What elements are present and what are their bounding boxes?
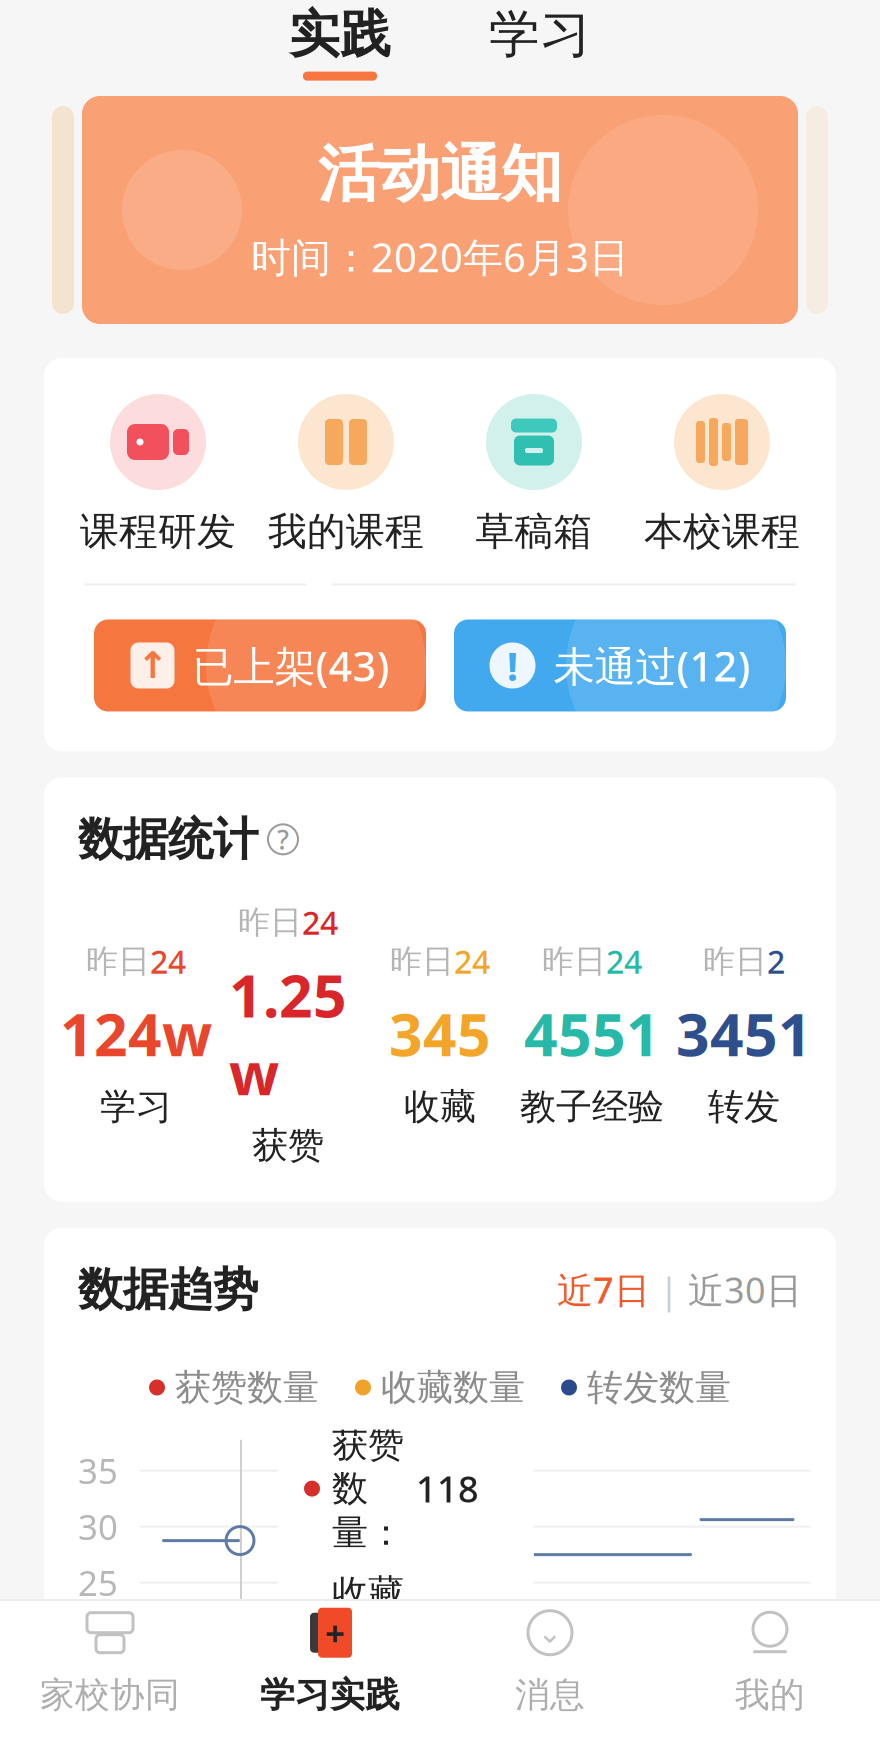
staticText: 345 (389, 995, 491, 1072)
staticText: 昨日 (542, 942, 606, 981)
staticText: 数据趋势 (78, 1262, 258, 1317)
button[interactable]: 近7日 (557, 1266, 650, 1313)
button[interactable]: 实践 (283, 3, 397, 81)
staticText: 20 (78, 1616, 118, 1662)
staticText: 124w (60, 995, 212, 1072)
staticText: ! (507, 639, 518, 692)
staticText: | (650, 1266, 688, 1313)
button[interactable]: ↑ (94, 619, 426, 711)
staticText: 1.25w (229, 956, 347, 1111)
staticText: 活动通知 (318, 137, 562, 212)
staticText: 收藏数量： (332, 1571, 404, 1704)
button[interactable]: 昨日 (516, 940, 668, 1129)
button[interactable]: 学习 (483, 3, 597, 81)
staticText: 我的课程 (268, 508, 424, 555)
staticText: 未通过(12) (553, 638, 750, 693)
staticText: 数据统计 (78, 811, 258, 867)
staticText: 家校协同 (40, 1674, 180, 1716)
button[interactable]: 昨日 (668, 940, 820, 1129)
button[interactable]: ⌄ (440, 1601, 660, 1721)
staticText: 收藏数量 (381, 1365, 525, 1410)
staticText: 昨日 (238, 903, 302, 942)
staticText: 学习 (489, 3, 591, 66)
staticText: 昨日 (390, 942, 454, 981)
button[interactable]: 课程研发 (64, 394, 252, 555)
staticText: 时间：2020年6月3日 (251, 230, 629, 283)
staticText: 草稿箱 (475, 508, 592, 555)
staticText: 本校课程 (644, 508, 800, 555)
button[interactable]: 昨日 (364, 940, 516, 1129)
staticText: + (325, 1610, 345, 1656)
button[interactable]: 昨日 (212, 901, 364, 1168)
staticText: 118 (416, 1465, 479, 1512)
staticText: 24 (302, 901, 338, 944)
staticText: ⌄ (537, 1616, 562, 1649)
button[interactable]: 本校课程 (628, 394, 816, 555)
button[interactable]: 数据统计说明 (268, 824, 298, 854)
staticText: 30 (78, 1504, 118, 1550)
staticText: 25 (78, 1560, 118, 1606)
button[interactable]: + (220, 1601, 440, 1721)
staticText: 3451 (676, 995, 812, 1072)
staticText: 昨日 (86, 942, 150, 981)
staticText: 教子经验 (520, 1084, 664, 1129)
staticText: 获赞 (252, 1123, 324, 1168)
staticText: 24 (606, 940, 642, 983)
staticText: 昨日 (703, 942, 767, 981)
staticText: 24 (454, 940, 490, 983)
button[interactable]: 家校协同 (0, 1601, 220, 1721)
button[interactable]: 近30日 (688, 1266, 802, 1313)
button[interactable]: 我的 (660, 1601, 880, 1721)
staticText: 学习 (100, 1084, 172, 1129)
staticText: 35 (78, 1448, 118, 1494)
staticText: 课程研发 (80, 508, 236, 555)
staticText: 获赞数量： (332, 1422, 404, 1555)
staticText: 24 (150, 940, 186, 983)
staticText: 4551 (524, 995, 660, 1072)
staticText: ↑ (137, 644, 168, 687)
staticText: 消息 (515, 1674, 585, 1716)
staticText: ? (277, 822, 289, 857)
button[interactable]: 草稿箱 (440, 394, 628, 555)
staticText: 2 (767, 940, 785, 983)
button[interactable]: 我的课程 (252, 394, 440, 555)
staticText: 转发数量 (587, 1365, 731, 1410)
staticText: 近30日 (688, 1266, 802, 1313)
button[interactable]: ! (454, 619, 786, 711)
staticText: 获赞数量 (175, 1365, 319, 1410)
button[interactable]: 昨日 (60, 940, 212, 1129)
staticText: 收藏 (404, 1084, 476, 1129)
staticText: 已上架(43) (192, 638, 389, 693)
button[interactable]: 活动通知 (82, 96, 798, 324)
staticText: 实践 (289, 3, 391, 66)
staticText: 我的 (735, 1674, 805, 1716)
staticText: 近7日 (557, 1266, 650, 1313)
staticText: 学习实践 (260, 1674, 400, 1716)
staticText: 转发 (708, 1084, 780, 1129)
staticText: 3月1日 (304, 1351, 430, 1404)
